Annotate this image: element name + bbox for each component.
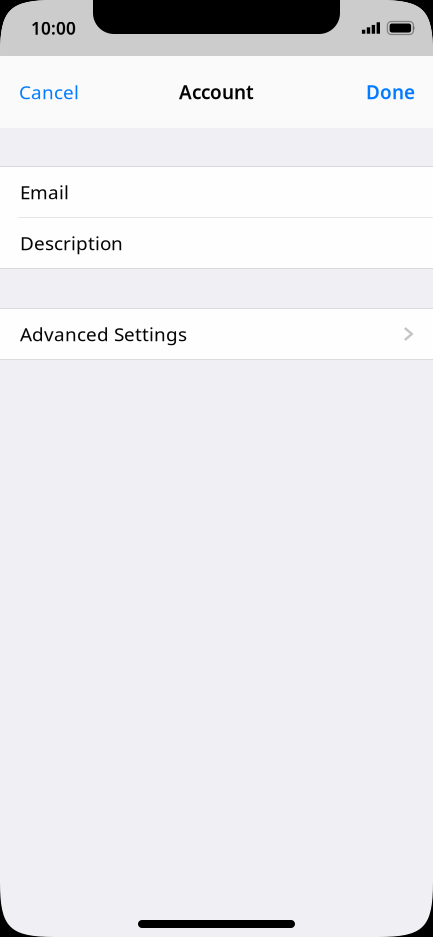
staticText: Description	[20, 230, 123, 256]
staticText: Cancel	[19, 79, 79, 105]
staticText: Account	[179, 79, 254, 105]
button[interactable]: Cancel	[19, 69, 89, 115]
button[interactable]: Advanced Settings	[0, 309, 433, 359]
staticText: Advanced Settings	[20, 321, 187, 347]
staticText: 10:00	[31, 16, 76, 40]
staticText: Done	[366, 79, 415, 105]
button[interactable]: Done	[356, 69, 415, 115]
staticText: Email	[20, 179, 69, 205]
button[interactable]: Description	[0, 218, 433, 268]
button[interactable]: Email	[0, 167, 433, 217]
